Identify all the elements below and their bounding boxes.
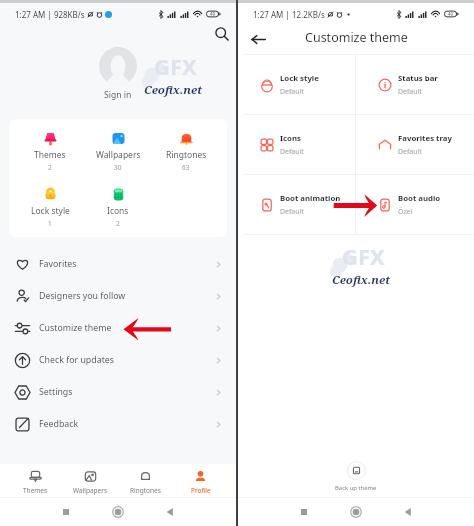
button[interactable]: Home: [110, 504, 126, 520]
button[interactable]: Back: [162, 504, 178, 520]
button[interactable]: Profile: [173, 464, 228, 497]
staticText: Default: [280, 147, 304, 156]
button[interactable]: Wallpapers: [84, 119, 152, 175]
button[interactable]: Icons: [238, 115, 355, 174]
staticText: 49: [210, 11, 216, 17]
button[interactable]: Themes: [8, 464, 63, 497]
button[interactable]: Recents: [296, 504, 312, 520]
staticText: 49: [448, 11, 454, 17]
staticText: Ringtones: [166, 149, 207, 161]
button[interactable]: Back: [400, 504, 416, 520]
staticText: 30: [114, 163, 122, 172]
button[interactable]: Check for updates: [0, 344, 236, 376]
staticText: 2: [116, 219, 120, 228]
staticText: Sign in: [104, 89, 132, 101]
staticText: 1: [48, 219, 52, 228]
button[interactable]: Lock style: [238, 55, 355, 114]
staticText: Check for updates: [39, 354, 114, 366]
button[interactable]: Status bar: [356, 55, 474, 114]
staticText: 63: [182, 163, 190, 172]
staticText: Customize theme: [39, 322, 112, 334]
staticText: Boot animation: [280, 193, 341, 204]
staticText: GFX: [154, 51, 197, 81]
staticText: Ceofix.net: [144, 82, 202, 98]
staticText: Wallpapers: [73, 486, 108, 495]
button[interactable]: Home: [348, 504, 364, 520]
button[interactable]: Back up theme: [335, 461, 377, 492]
staticText: Favorites tray: [398, 133, 452, 144]
button[interactable]: Recents: [58, 504, 74, 520]
staticText: Customize theme: [305, 29, 408, 46]
staticText: Default: [280, 87, 304, 96]
staticText: Favorites: [39, 258, 77, 270]
button[interactable]: Favorites tray: [356, 115, 474, 174]
staticText: Ringtones: [130, 486, 161, 495]
button[interactable]: Lock style: [16, 175, 84, 231]
staticText: Themes: [23, 486, 48, 495]
button[interactable]: Icons: [84, 175, 152, 231]
button[interactable]: Search: [214, 26, 230, 42]
button[interactable]: Boot animation: [238, 175, 355, 234]
staticText: Lock style: [280, 73, 319, 84]
staticText: GFX: [342, 241, 385, 271]
staticText: Designers you follow: [39, 290, 126, 302]
button[interactable]: Back: [250, 31, 267, 48]
staticText: Lock style: [31, 205, 70, 217]
staticText: Back up theme: [335, 484, 377, 492]
staticText: Ceofix.net: [332, 272, 390, 288]
button[interactable]: Designers you follow: [0, 280, 236, 312]
staticText: 1:27 AM | 928KB/s: [15, 9, 85, 20]
button[interactable]: Customize theme: [0, 312, 236, 344]
staticText: Settings: [39, 386, 73, 398]
staticText: Wallpapers: [96, 149, 141, 161]
staticText: Icons: [107, 205, 129, 217]
button[interactable]: [99, 47, 137, 85]
staticText: Default: [398, 147, 422, 156]
button[interactable]: Themes: [16, 119, 84, 175]
button[interactable]: Favorites: [0, 248, 236, 280]
button[interactable]: Feedback: [0, 408, 236, 440]
staticText: Status bar: [398, 73, 438, 84]
staticText: Profile: [191, 486, 211, 495]
staticText: Boot audio: [398, 193, 441, 204]
staticText: Feedback: [39, 418, 79, 430]
button[interactable]: Wallpapers: [63, 464, 118, 497]
button[interactable]: Ringtones: [118, 464, 173, 497]
button[interactable]: Ringtones: [152, 119, 220, 175]
staticText: Themes: [34, 149, 66, 161]
staticText: 2: [48, 163, 52, 172]
button[interactable]: Boot audio: [356, 175, 474, 234]
staticText: Default: [280, 207, 304, 216]
staticText: Icons: [280, 133, 301, 144]
staticText: Özel: [398, 207, 413, 216]
staticText: 1:27 AM | 12.2KB/s: [253, 9, 325, 20]
staticText: Default: [398, 87, 422, 96]
button[interactable]: Settings: [0, 376, 236, 408]
